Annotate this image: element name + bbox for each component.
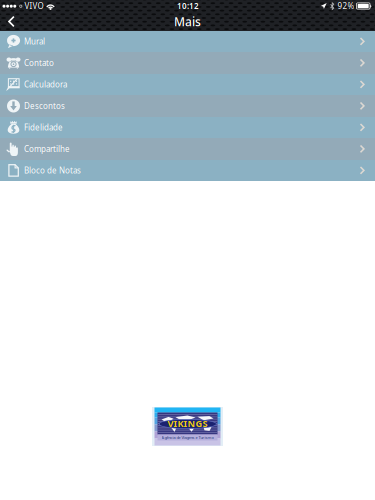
button[interactable]: Back [0,12,41,31]
staticText: Agência de Viagens e Turismo [161,435,213,440]
staticText: 10:12 [177,1,199,11]
button[interactable]: Calculadora [0,74,375,95]
staticText: Descontos [24,101,65,111]
button[interactable]: Descontos [0,95,375,117]
staticText: VIKINGS [167,417,207,430]
staticText: Contato [24,58,54,68]
staticText: Bloco de Notas [24,165,81,176]
staticText: Mural [24,36,45,47]
button[interactable]: Mural [0,31,375,52]
staticText: Fidelidade [24,122,63,133]
staticText: Compartilhe [24,144,70,154]
button[interactable]: Compartilhe [0,138,375,160]
staticText: Mais [174,13,201,29]
button[interactable]: Contato [0,52,375,74]
staticText: VIVO [24,1,43,11]
staticText: 92% [337,1,354,11]
staticText: Calculadora [24,79,67,90]
button[interactable]: Bloco de Notas [0,160,375,181]
button[interactable]: Fidelidade [0,117,375,138]
